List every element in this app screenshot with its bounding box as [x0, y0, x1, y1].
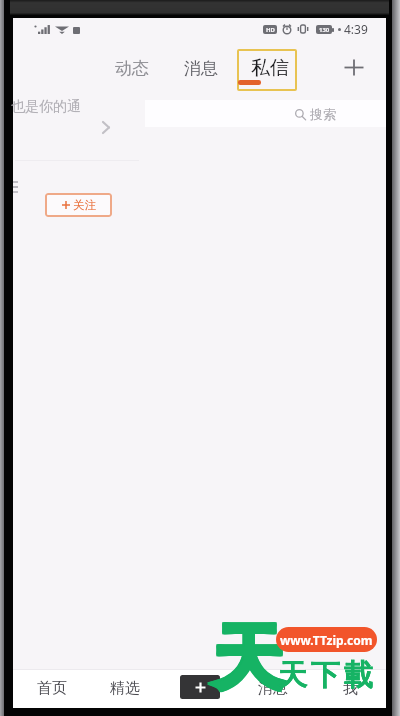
staticText: 私信 — [251, 56, 289, 80]
staticText: HD — [266, 26, 275, 34]
button[interactable]: 消息 — [252, 673, 294, 704]
button[interactable]: 消息 — [183, 54, 219, 83]
staticText: 天下載 — [276, 657, 375, 694]
staticText: 天 — [214, 616, 284, 704]
staticText: 也是你的通 — [11, 98, 81, 116]
staticText: 首页 — [37, 679, 67, 698]
staticText: 天 — [212, 615, 282, 703]
staticText: 消息 — [258, 679, 288, 698]
staticText: 天 — [213, 615, 283, 703]
button[interactable]: 动态 — [114, 54, 150, 83]
staticText: 天 — [213, 616, 283, 704]
button[interactable]: 精选 — [104, 673, 146, 704]
button[interactable]: 我 — [337, 673, 364, 704]
button[interactable]: Post — [180, 675, 220, 699]
staticText: 我 — [343, 679, 358, 698]
staticText: 天下載 — [276, 657, 375, 694]
staticText: 130 — [319, 26, 330, 34]
staticText: 消息 — [184, 58, 218, 79]
button[interactable]: 首页 — [31, 673, 73, 704]
staticText: 天 — [212, 614, 282, 702]
staticText: 天 — [212, 616, 282, 704]
staticText: 天 — [214, 615, 284, 703]
button[interactable] — [237, 49, 297, 91]
button[interactable]: Add — [336, 49, 372, 85]
staticText: 4:39 — [344, 21, 368, 37]
staticText: 天 — [214, 614, 284, 702]
staticText: 搜索 — [310, 106, 336, 122]
staticText: 关注 — [73, 198, 96, 212]
button[interactable]: 关注 — [45, 193, 112, 217]
staticText: 天 — [213, 614, 283, 702]
button[interactable]: 搜索 — [145, 100, 386, 127]
staticText: 动态 — [115, 58, 149, 79]
staticText: 精选 — [110, 679, 140, 698]
staticText: www.TTzip.com — [280, 632, 373, 648]
